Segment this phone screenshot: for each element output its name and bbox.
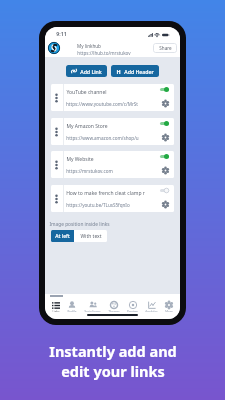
- staticText: https://www.youtube.com/c/MrSt: [66, 101, 138, 107]
- staticText: https://youtu.be/TLusS5fqnIo: [66, 202, 130, 208]
- staticText: H: [116, 68, 121, 75]
- staticText: Add Link: [80, 68, 102, 75]
- button[interactable]: Link settings: [162, 167, 169, 174]
- button[interactable]: Share: [153, 43, 177, 53]
- button[interactable]: Link disabled: [160, 188, 169, 193]
- staticText: My Amazon Store: [66, 123, 108, 130]
- staticText: Share: [159, 45, 172, 51]
- staticText: Add Header: [124, 68, 154, 75]
- staticText: Image position inside links: [49, 221, 110, 228]
- button[interactable]: My Amazon Store: [51, 118, 174, 145]
- staticText: Instantly add and: [49, 341, 177, 361]
- button[interactable]: Themes: [108, 301, 120, 312]
- staticText: YouTube channel: [66, 89, 107, 96]
- staticText: More: [165, 310, 173, 312]
- staticText: Links: [52, 310, 60, 312]
- button[interactable]: Social icons: [84, 301, 101, 312]
- staticText: Themes: [108, 310, 120, 312]
- button[interactable]: Link enabled: [160, 87, 169, 92]
- staticText: Profile: [67, 310, 77, 312]
- button[interactable]: How to make french cleat clamp r: [51, 185, 174, 212]
- staticText: My Website: [66, 156, 94, 163]
- staticText: My linkhub: [77, 43, 101, 49]
- staticText: https://mrstukov.com: [66, 168, 113, 174]
- staticText: Preview: [127, 310, 138, 312]
- staticText: Analytics: [145, 310, 158, 312]
- button[interactable]: Link enabled: [160, 154, 169, 159]
- button[interactable]: Analytics: [145, 301, 158, 312]
- button[interactable]: At left: [51, 230, 74, 242]
- staticText: At left: [55, 233, 70, 240]
- staticText: https://www.amazon.com/shop/u: [66, 135, 139, 141]
- button[interactable]: Link settings: [162, 201, 169, 208]
- button[interactable]: H: [111, 65, 159, 77]
- staticText: How to make french cleat clamp r: [66, 190, 145, 197]
- staticText: Social icons: [84, 310, 101, 312]
- button[interactable]: Link settings: [162, 100, 169, 107]
- button[interactable]: More: [165, 301, 173, 312]
- button[interactable]: With text: [74, 230, 107, 242]
- staticText: 9:11: [56, 30, 67, 37]
- staticText: With text: [80, 233, 102, 240]
- button[interactable]: Preview: [127, 301, 138, 312]
- button[interactable]: Links: [52, 301, 60, 312]
- button[interactable]: Add Link: [66, 65, 107, 77]
- button[interactable]: Link settings: [162, 134, 169, 141]
- button[interactable]: Profile: [67, 301, 77, 312]
- button[interactable]: YouTube channel: [51, 84, 174, 111]
- staticText: https://lhub.to/mrstukov: [77, 50, 131, 56]
- staticText: edit your links: [61, 361, 165, 381]
- button[interactable]: Link enabled: [160, 121, 169, 126]
- button[interactable]: My Website: [51, 151, 174, 178]
